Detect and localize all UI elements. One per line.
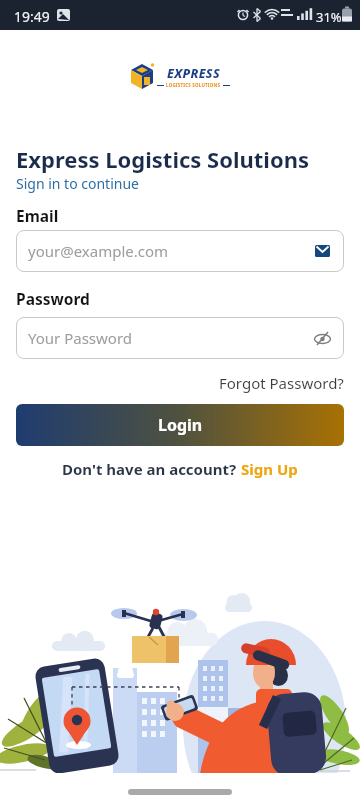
button[interactable]: your@example.com bbox=[16, 230, 344, 272]
staticText: Don't have an account? bbox=[62, 459, 241, 479]
button[interactable]: Login bbox=[16, 404, 344, 446]
button[interactable]: Sign Up bbox=[241, 459, 298, 479]
staticText: Express Logistics Solutions bbox=[16, 144, 310, 174]
staticText: your@example.com bbox=[28, 241, 169, 261]
staticText: Password bbox=[16, 288, 90, 309]
staticText: Your Password bbox=[28, 328, 133, 348]
staticText: 31% bbox=[316, 8, 342, 26]
button[interactable]: Sign in to continue bbox=[16, 174, 139, 193]
staticText: 19:49 bbox=[14, 7, 50, 26]
button[interactable]: Your Password bbox=[16, 317, 344, 359]
staticText: Email bbox=[16, 205, 59, 226]
staticText: LOGISTICS SOLUTIONS bbox=[166, 82, 221, 88]
button[interactable]: Forgot Password? bbox=[219, 373, 344, 393]
staticText: EXPRESS bbox=[167, 65, 220, 82]
staticText: Login bbox=[158, 414, 203, 436]
